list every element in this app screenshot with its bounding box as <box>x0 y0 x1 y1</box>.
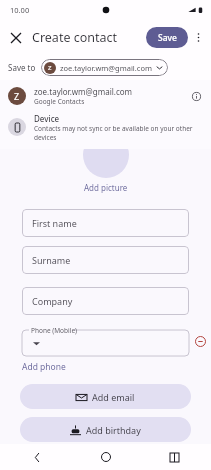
staticText: Contacts may not sync or be available on… <box>34 124 203 142</box>
button[interactable]: Back <box>26 446 48 468</box>
staticText: Save to <box>8 62 36 73</box>
button[interactable]: Device <box>0 109 211 145</box>
button[interactable]: Add birthday <box>20 417 191 442</box>
button[interactable]: First name <box>22 209 189 237</box>
button[interactable]: Add email <box>20 384 191 409</box>
staticText: Device <box>34 113 60 124</box>
button[interactable]: Home <box>95 446 117 468</box>
button[interactable]: Remove phone <box>189 326 211 356</box>
button[interactable]: Add address <box>20 450 191 470</box>
button[interactable]: Recent apps <box>163 446 185 468</box>
button[interactable]: More options <box>188 27 209 48</box>
staticText: Add address <box>87 454 140 466</box>
staticText: Z <box>14 90 20 102</box>
staticText: Create contact <box>32 29 118 46</box>
button[interactable]: Info <box>185 85 207 107</box>
button[interactable]: Surname <box>22 246 189 274</box>
staticText: Add email <box>92 391 135 403</box>
button[interactable]: Company <box>22 287 189 315</box>
button[interactable]: Phone (Mobile) <box>22 326 189 356</box>
staticText: zoe.taylor.wm@gmail.com <box>60 63 152 73</box>
staticText: Z <box>48 64 52 72</box>
staticText: Add birthday <box>86 424 141 436</box>
staticText: Phone (Mobile) <box>31 326 78 335</box>
button[interactable]: Z <box>0 83 211 109</box>
staticText: zoe.taylor.wm@gmail.com <box>34 86 133 97</box>
staticText: Add picture <box>84 182 128 193</box>
button[interactable]: Add picture <box>83 132 129 178</box>
button[interactable]: Close <box>4 26 28 50</box>
staticText: First name <box>32 217 77 229</box>
staticText: Save <box>158 32 177 44</box>
staticText: 10.00 <box>10 5 30 15</box>
button[interactable]: Add phone <box>22 361 66 373</box>
button[interactable]: Z <box>41 59 168 76</box>
staticText: Company <box>32 295 73 307</box>
button[interactable]: Save <box>146 27 188 48</box>
staticText: Google Contacts <box>34 97 85 106</box>
staticText: Surname <box>32 254 71 266</box>
